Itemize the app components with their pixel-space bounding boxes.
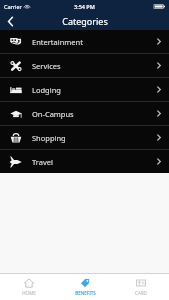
staticText: Carrier — [4, 3, 22, 10]
staticText: 3:54 PM — [74, 3, 95, 10]
button[interactable]: HOME — [0, 274, 57, 300]
staticText: CARD — [135, 290, 147, 296]
staticText: BENEFITS — [75, 290, 96, 296]
staticText: Lodging — [32, 85, 61, 95]
button[interactable]: BENEFITS — [57, 274, 113, 300]
staticText: On-Campus — [32, 109, 74, 119]
button[interactable]: Services — [0, 54, 169, 77]
staticText: Services — [32, 61, 61, 71]
staticText: Travel — [32, 157, 53, 167]
button[interactable]: Travel — [0, 150, 169, 173]
button[interactable]: CARD — [113, 274, 169, 300]
staticText: Entertainment — [32, 37, 83, 47]
staticText: Categories — [62, 15, 108, 27]
button[interactable]: Shopping — [0, 126, 169, 149]
staticText: Shopping — [32, 133, 66, 143]
staticText: HOME — [22, 290, 36, 296]
button[interactable]: On-Campus — [0, 102, 169, 125]
button[interactable]: Lodging — [0, 78, 169, 101]
button[interactable]: Back — [0, 12, 20, 30]
button[interactable]: Entertainment — [0, 30, 169, 53]
